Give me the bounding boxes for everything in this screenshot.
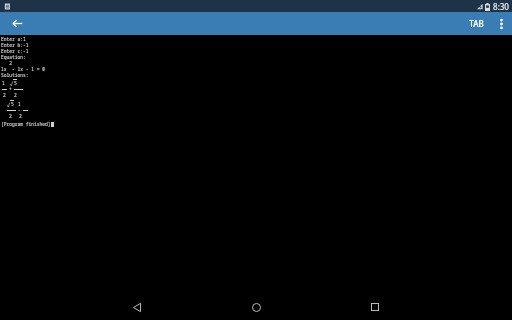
staticText: - bbox=[18, 107, 21, 113]
button[interactable]: TAB bbox=[462, 12, 491, 35]
button[interactable]: Back bbox=[120, 294, 154, 320]
staticText: 2 bbox=[14, 92, 17, 98]
staticText: [Program finished] bbox=[1, 121, 51, 127]
staticText: Solutions: bbox=[1, 72, 29, 78]
button[interactable]: Recent apps bbox=[358, 294, 392, 320]
staticText: 5 bbox=[14, 80, 17, 86]
staticText: 1x - 1x - 1 = 0 bbox=[1, 66, 46, 72]
button[interactable]: Home bbox=[239, 294, 273, 320]
staticText: 5 bbox=[11, 101, 14, 107]
button[interactable]: Back bbox=[0, 12, 34, 35]
staticText: Enter a:1 bbox=[1, 36, 26, 42]
button[interactable]: More options bbox=[491, 12, 512, 35]
staticText: 2 bbox=[3, 92, 6, 98]
staticText: 1 bbox=[18, 101, 21, 107]
staticText: 1 bbox=[2, 80, 5, 86]
staticText: Equation: bbox=[1, 54, 26, 60]
staticText: 2 bbox=[1, 60, 13, 66]
staticText: 2 bbox=[9, 113, 12, 119]
staticText: TAB bbox=[469, 18, 484, 29]
staticText: 8:30 bbox=[493, 1, 509, 12]
staticText: Enter b:-1 bbox=[1, 42, 29, 48]
staticText: + bbox=[9, 86, 12, 92]
staticText: Enter c:-1 bbox=[1, 48, 29, 54]
staticText: 2 bbox=[19, 113, 22, 119]
